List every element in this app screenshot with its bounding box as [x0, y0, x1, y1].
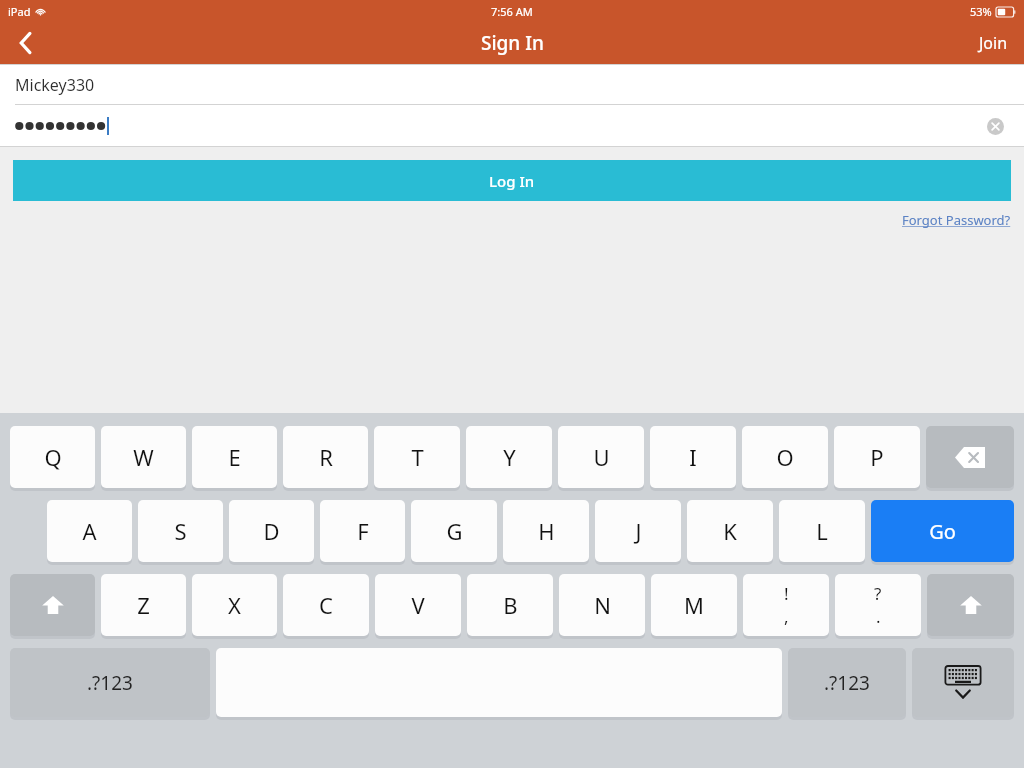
staticText: M: [684, 590, 704, 620]
staticText: I: [689, 442, 697, 472]
button[interactable]: X: [192, 574, 277, 639]
staticText: C: [319, 590, 333, 620]
button[interactable]: F: [320, 500, 405, 565]
staticText: U: [593, 442, 610, 472]
staticText: A: [82, 516, 97, 546]
staticText: V: [411, 590, 425, 620]
staticText: L: [816, 516, 828, 546]
button[interactable]: !: [743, 574, 829, 639]
staticText: K: [723, 516, 737, 546]
button[interactable]: J: [595, 500, 681, 565]
staticText: !: [784, 582, 789, 605]
staticText: Go: [929, 518, 956, 545]
button[interactable]: ?: [835, 574, 921, 639]
staticText: F: [357, 516, 369, 546]
staticText: B: [503, 590, 518, 620]
button[interactable]: I: [650, 426, 736, 491]
button[interactable]: Go: [871, 500, 1014, 565]
button[interactable]: T: [374, 426, 460, 491]
staticText: Sign In: [481, 30, 544, 56]
staticText: Q: [44, 442, 62, 472]
button[interactable]: Y: [466, 426, 552, 491]
staticText: R: [319, 442, 333, 472]
staticText: Forgot Password?: [902, 211, 1011, 229]
button[interactable]: Mickey330: [0, 65, 1024, 104]
staticText: 7:56 AM: [491, 4, 533, 19]
staticText: T: [411, 442, 424, 472]
button[interactable]: P: [834, 426, 920, 491]
staticText: Z: [137, 590, 150, 620]
staticText: Y: [503, 442, 516, 472]
button[interactable]: Hide keyboard: [912, 648, 1014, 720]
button[interactable]: Clear text: [980, 111, 1010, 141]
staticText: E: [228, 442, 241, 472]
button[interactable]: Space: [216, 648, 782, 720]
button[interactable]: K: [687, 500, 773, 565]
staticText: J: [635, 516, 642, 546]
button[interactable]: D: [229, 500, 314, 565]
button[interactable]: L: [779, 500, 865, 565]
button[interactable]: .?123: [788, 648, 906, 720]
button[interactable]: Back: [0, 22, 52, 64]
staticText: O: [776, 442, 794, 472]
button[interactable]: .?123: [10, 648, 210, 720]
staticText: H: [538, 516, 555, 546]
staticText: Join: [979, 32, 1008, 54]
staticText: 53%: [970, 4, 992, 19]
staticText: .?123: [87, 670, 133, 696]
staticText: ,: [784, 605, 789, 628]
button[interactable]: Shift: [10, 574, 95, 639]
button[interactable]: H: [503, 500, 589, 565]
staticText: X: [228, 590, 241, 620]
staticText: G: [446, 516, 463, 546]
staticText: Mickey330: [15, 74, 95, 96]
button[interactable]: Shift: [927, 574, 1014, 639]
staticText: .: [876, 605, 881, 628]
button[interactable]: Z: [101, 574, 186, 639]
staticText: W: [133, 442, 154, 472]
button[interactable]: V: [375, 574, 461, 639]
button[interactable]: Clear text: [0, 105, 1024, 146]
button[interactable]: O: [742, 426, 828, 491]
staticText: ?: [874, 582, 882, 605]
staticText: .?123: [824, 670, 870, 696]
button[interactable]: S: [138, 500, 223, 565]
button[interactable]: C: [283, 574, 369, 639]
button[interactable]: G: [411, 500, 497, 565]
button[interactable]: M: [651, 574, 737, 639]
staticText: D: [263, 516, 280, 546]
staticText: S: [174, 516, 187, 546]
button[interactable]: Q: [10, 426, 95, 491]
button[interactable]: U: [558, 426, 644, 491]
button[interactable]: Backspace: [926, 426, 1014, 491]
button[interactable]: Forgot Password?: [902, 209, 1024, 231]
button[interactable]: Log In: [13, 160, 1011, 201]
button[interactable]: W: [101, 426, 186, 491]
staticText: P: [870, 442, 884, 472]
staticText: Log In: [489, 171, 535, 191]
button[interactable]: E: [192, 426, 277, 491]
button[interactable]: N: [559, 574, 645, 639]
button[interactable]: R: [283, 426, 368, 491]
button[interactable]: Join: [963, 22, 1024, 64]
button[interactable]: A: [47, 500, 132, 565]
staticText: N: [594, 590, 611, 620]
button[interactable]: B: [467, 574, 553, 639]
staticText: iPad: [8, 4, 31, 19]
